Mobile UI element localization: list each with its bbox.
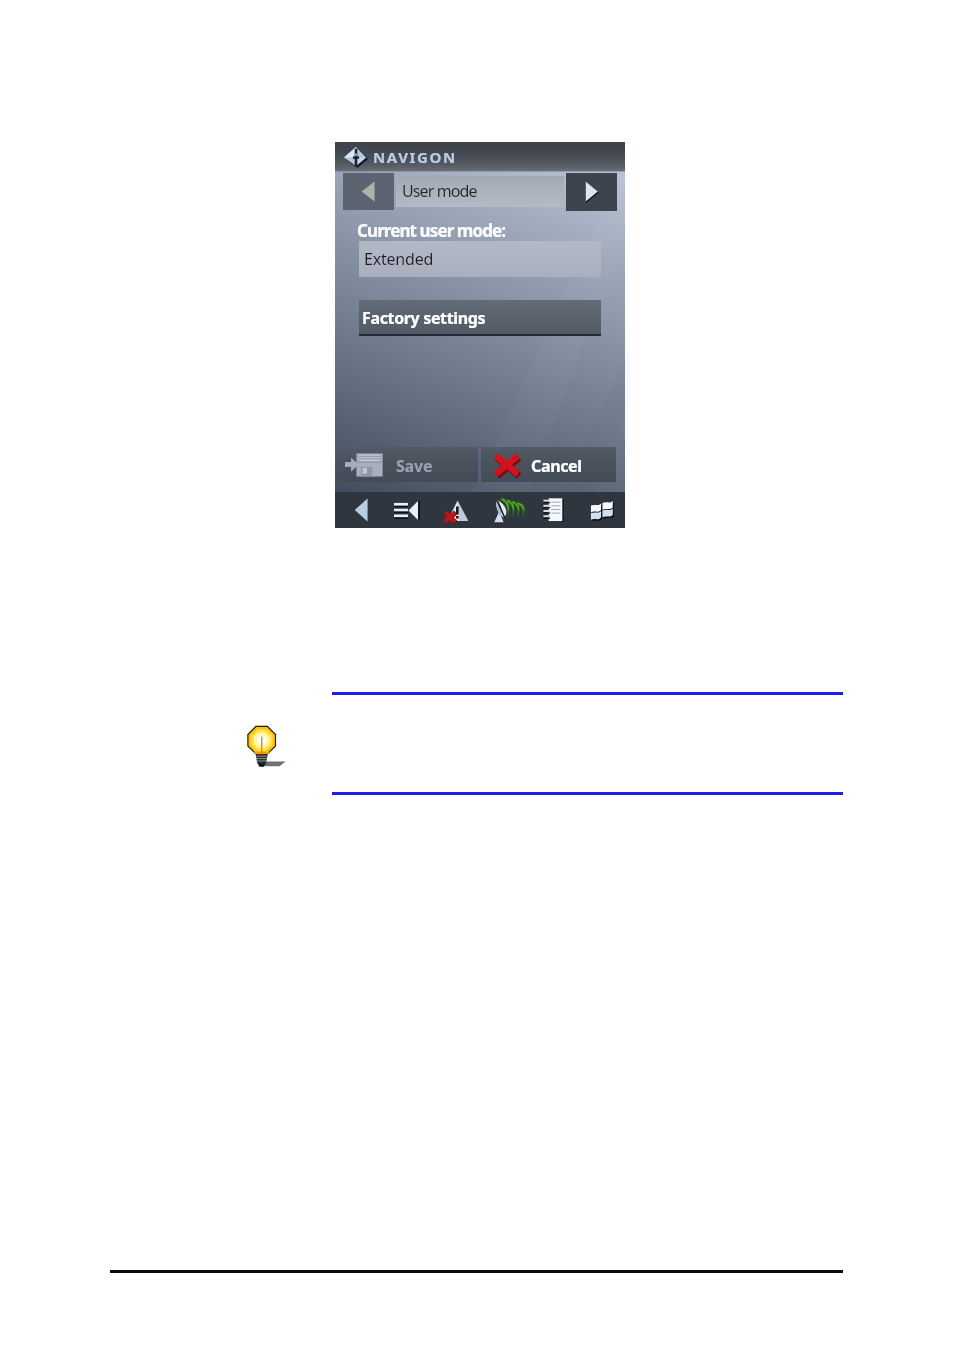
button[interactable]: Forward bbox=[566, 173, 617, 211]
button[interactable]: Start bbox=[577, 492, 625, 528]
staticText: Cancel bbox=[531, 455, 582, 477]
staticText: User mode bbox=[402, 180, 477, 202]
staticText: Factory settings bbox=[362, 307, 486, 329]
button[interactable]: Back bbox=[343, 173, 394, 210]
button[interactable]: Route information bbox=[433, 492, 481, 528]
button[interactable]: GPS status bbox=[481, 492, 529, 528]
button[interactable]: Back bbox=[335, 492, 384, 528]
staticText: Current user mode: bbox=[357, 219, 506, 242]
button[interactable]: Cancel bbox=[481, 447, 616, 482]
button[interactable]: User mode bbox=[396, 176, 564, 207]
staticText: NAVIGON bbox=[373, 147, 457, 167]
staticText: Save bbox=[396, 455, 433, 477]
button[interactable]: Save bbox=[337, 447, 478, 482]
button[interactable]: Extended bbox=[359, 241, 601, 277]
button[interactable]: Factory settings bbox=[359, 300, 601, 336]
staticText: Extended bbox=[364, 248, 434, 270]
button[interactable]: Menu bbox=[384, 492, 433, 528]
button[interactable]: Notes bbox=[529, 492, 577, 528]
